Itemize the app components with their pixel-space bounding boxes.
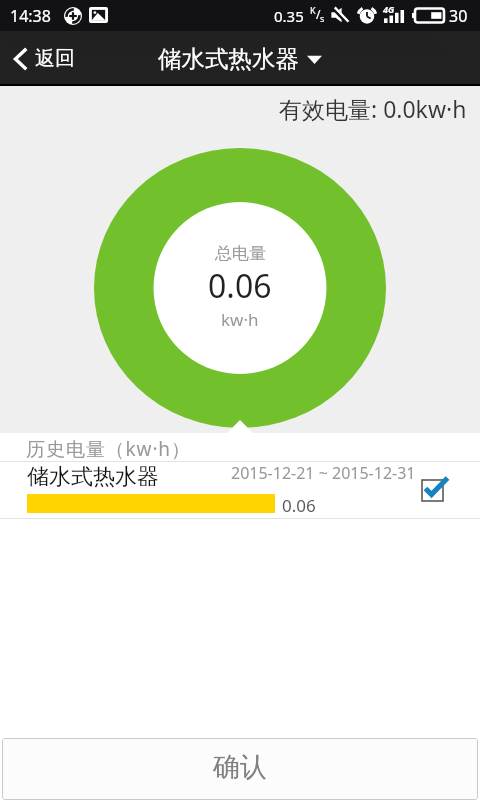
staticText: 总电量 bbox=[215, 243, 266, 264]
button[interactable]: 返回 bbox=[0, 38, 87, 79]
button[interactable]: Selected bbox=[419, 476, 451, 504]
staticText: 确认 bbox=[213, 750, 267, 784]
staticText: 储水式热水器 bbox=[27, 463, 159, 491]
staticText: kw·h bbox=[221, 308, 259, 331]
staticText: 0.06 bbox=[282, 494, 316, 517]
button[interactable]: 储水式热水器 bbox=[158, 44, 322, 74]
button[interactable]: 储水式热水器 bbox=[0, 462, 480, 518]
staticText: 30 bbox=[449, 5, 468, 27]
staticText: 储水式热水器 bbox=[158, 44, 299, 74]
staticText: 4G bbox=[383, 3, 395, 15]
staticText: 0.35 bbox=[274, 6, 304, 26]
staticText: 返回 bbox=[35, 46, 75, 71]
staticText: 14:38 bbox=[10, 5, 51, 27]
button[interactable]: 确认 bbox=[2, 738, 478, 800]
staticText: 有效电量: 0.0kw·h bbox=[279, 93, 467, 124]
staticText: / bbox=[316, 6, 321, 22]
staticText: 历史电量（kw·h） bbox=[26, 436, 191, 462]
staticText: K bbox=[310, 4, 316, 16]
staticText: 2015-12-21 ~ 2015-12-31 bbox=[231, 462, 416, 484]
staticText: 0.06 bbox=[208, 264, 272, 308]
staticText: s bbox=[320, 12, 325, 24]
